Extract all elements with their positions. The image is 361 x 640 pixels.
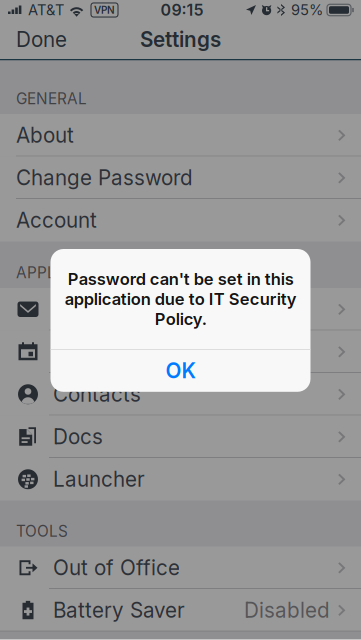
- button[interactable]: Out of Office: [0, 546, 361, 589]
- staticText: Settings: [140, 27, 221, 52]
- staticText: OK: [165, 358, 195, 383]
- button[interactable]: About: [0, 114, 361, 156]
- staticText: AT&T: [28, 1, 64, 19]
- staticText: TOOLS: [16, 522, 68, 540]
- button[interactable]: Battery Saver: [0, 589, 361, 631]
- staticText: Docs: [53, 424, 103, 449]
- staticText: APPLICATIONS: [16, 263, 128, 282]
- staticText: Contacts: [53, 382, 141, 407]
- staticText: Account: [16, 208, 97, 233]
- button[interactable]: Change Password: [0, 156, 361, 199]
- staticText: VPN: [94, 4, 115, 16]
- button[interactable]: Account: [0, 199, 361, 241]
- button[interactable]: Launcher: [0, 458, 361, 500]
- staticText: Disabled: [244, 598, 330, 623]
- button[interactable]: Docs: [0, 415, 361, 458]
- staticText: Password can't be set in this applicatio…: [64, 269, 296, 329]
- button[interactable]: Mail: [0, 288, 361, 330]
- staticText: 09:15: [160, 0, 203, 20]
- staticText: Mail: [53, 297, 94, 322]
- button[interactable]: Contacts: [0, 373, 361, 415]
- staticText: Calendar: [53, 339, 142, 364]
- button[interactable]: OK: [50, 350, 310, 392]
- staticText: About: [16, 123, 74, 148]
- button[interactable]: Calendar: [0, 330, 361, 373]
- staticText: Change Password: [16, 165, 193, 190]
- staticText: Out of Office: [53, 555, 180, 580]
- staticText: 95%: [291, 1, 323, 19]
- staticText: GENERAL: [16, 89, 87, 108]
- button[interactable]: Done: [0, 20, 83, 58]
- staticText: Launcher: [53, 467, 145, 492]
- staticText: Done: [16, 27, 67, 52]
- staticText: Battery Saver: [53, 598, 185, 623]
